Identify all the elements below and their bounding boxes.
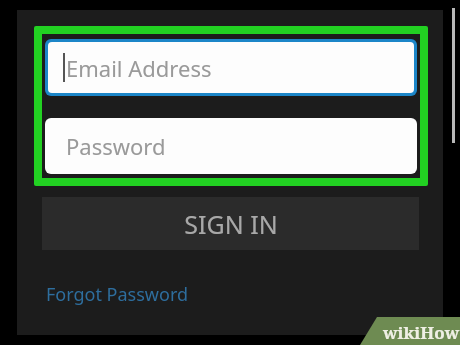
- staticText: SIGN IN: [184, 207, 278, 241]
- button[interactable]: Forgot Password: [46, 278, 206, 310]
- button[interactable]: SIGN IN: [42, 197, 419, 250]
- staticText: wikiHow: [383, 321, 460, 344]
- button[interactable]: Email Address: [45, 39, 417, 96]
- staticText: Password: [66, 131, 166, 161]
- staticText: Forgot Password: [46, 282, 189, 307]
- staticText: Email Address: [66, 53, 212, 83]
- button[interactable]: Password: [45, 118, 417, 174]
